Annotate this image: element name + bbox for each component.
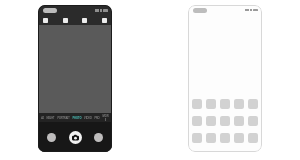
button[interactable]: App 14	[234, 133, 244, 143]
button[interactable]: MORE	[101, 114, 110, 122]
button[interactable]: PHOTO	[71, 116, 83, 120]
button[interactable]: App 7	[206, 116, 216, 126]
button[interactable]: App 1	[192, 99, 202, 109]
button[interactable]: App 11	[192, 133, 202, 143]
staticText: PHOTO	[72, 116, 82, 120]
button[interactable]: Settings	[102, 18, 107, 23]
staticText: PRO	[94, 116, 100, 120]
button[interactable]: PRO	[93, 116, 101, 120]
button[interactable]: App 10	[248, 116, 258, 126]
button[interactable]: AI	[40, 116, 45, 120]
button[interactable]: HDR	[63, 18, 68, 23]
button[interactable]: Flash	[38, 5, 112, 152]
button[interactable]: App 5	[248, 99, 258, 109]
button[interactable]	[38, 25, 112, 113]
button[interactable]: Gallery	[47, 133, 56, 142]
staticText: PORTRAIT	[57, 116, 70, 120]
button[interactable]: App 4	[234, 99, 244, 109]
staticText: MORE	[102, 114, 109, 122]
button[interactable]: Timer	[82, 18, 87, 23]
button[interactable]: VIDEO	[83, 116, 93, 120]
button[interactable]: App 3	[220, 99, 230, 109]
button[interactable]: PORTRAIT	[56, 116, 71, 120]
staticText: AI	[41, 116, 44, 120]
button[interactable]: Shutter	[69, 131, 82, 144]
button[interactable]: App 12	[206, 133, 216, 143]
button[interactable]: App 6	[192, 116, 202, 126]
button[interactable]: App 2	[206, 99, 216, 109]
button[interactable]: App 8	[220, 116, 230, 126]
button[interactable]: App 9	[234, 116, 244, 126]
button[interactable]: NIGHT	[45, 116, 56, 120]
button[interactable]: App 13	[220, 133, 230, 143]
staticText: VIDEO	[84, 116, 92, 120]
button[interactable]: Switch camera	[94, 133, 103, 142]
button[interactable]: App 15	[248, 133, 258, 143]
button[interactable]: Flash	[43, 18, 48, 23]
staticText: NIGHT	[46, 116, 55, 120]
button[interactable]: App 1	[188, 5, 262, 152]
